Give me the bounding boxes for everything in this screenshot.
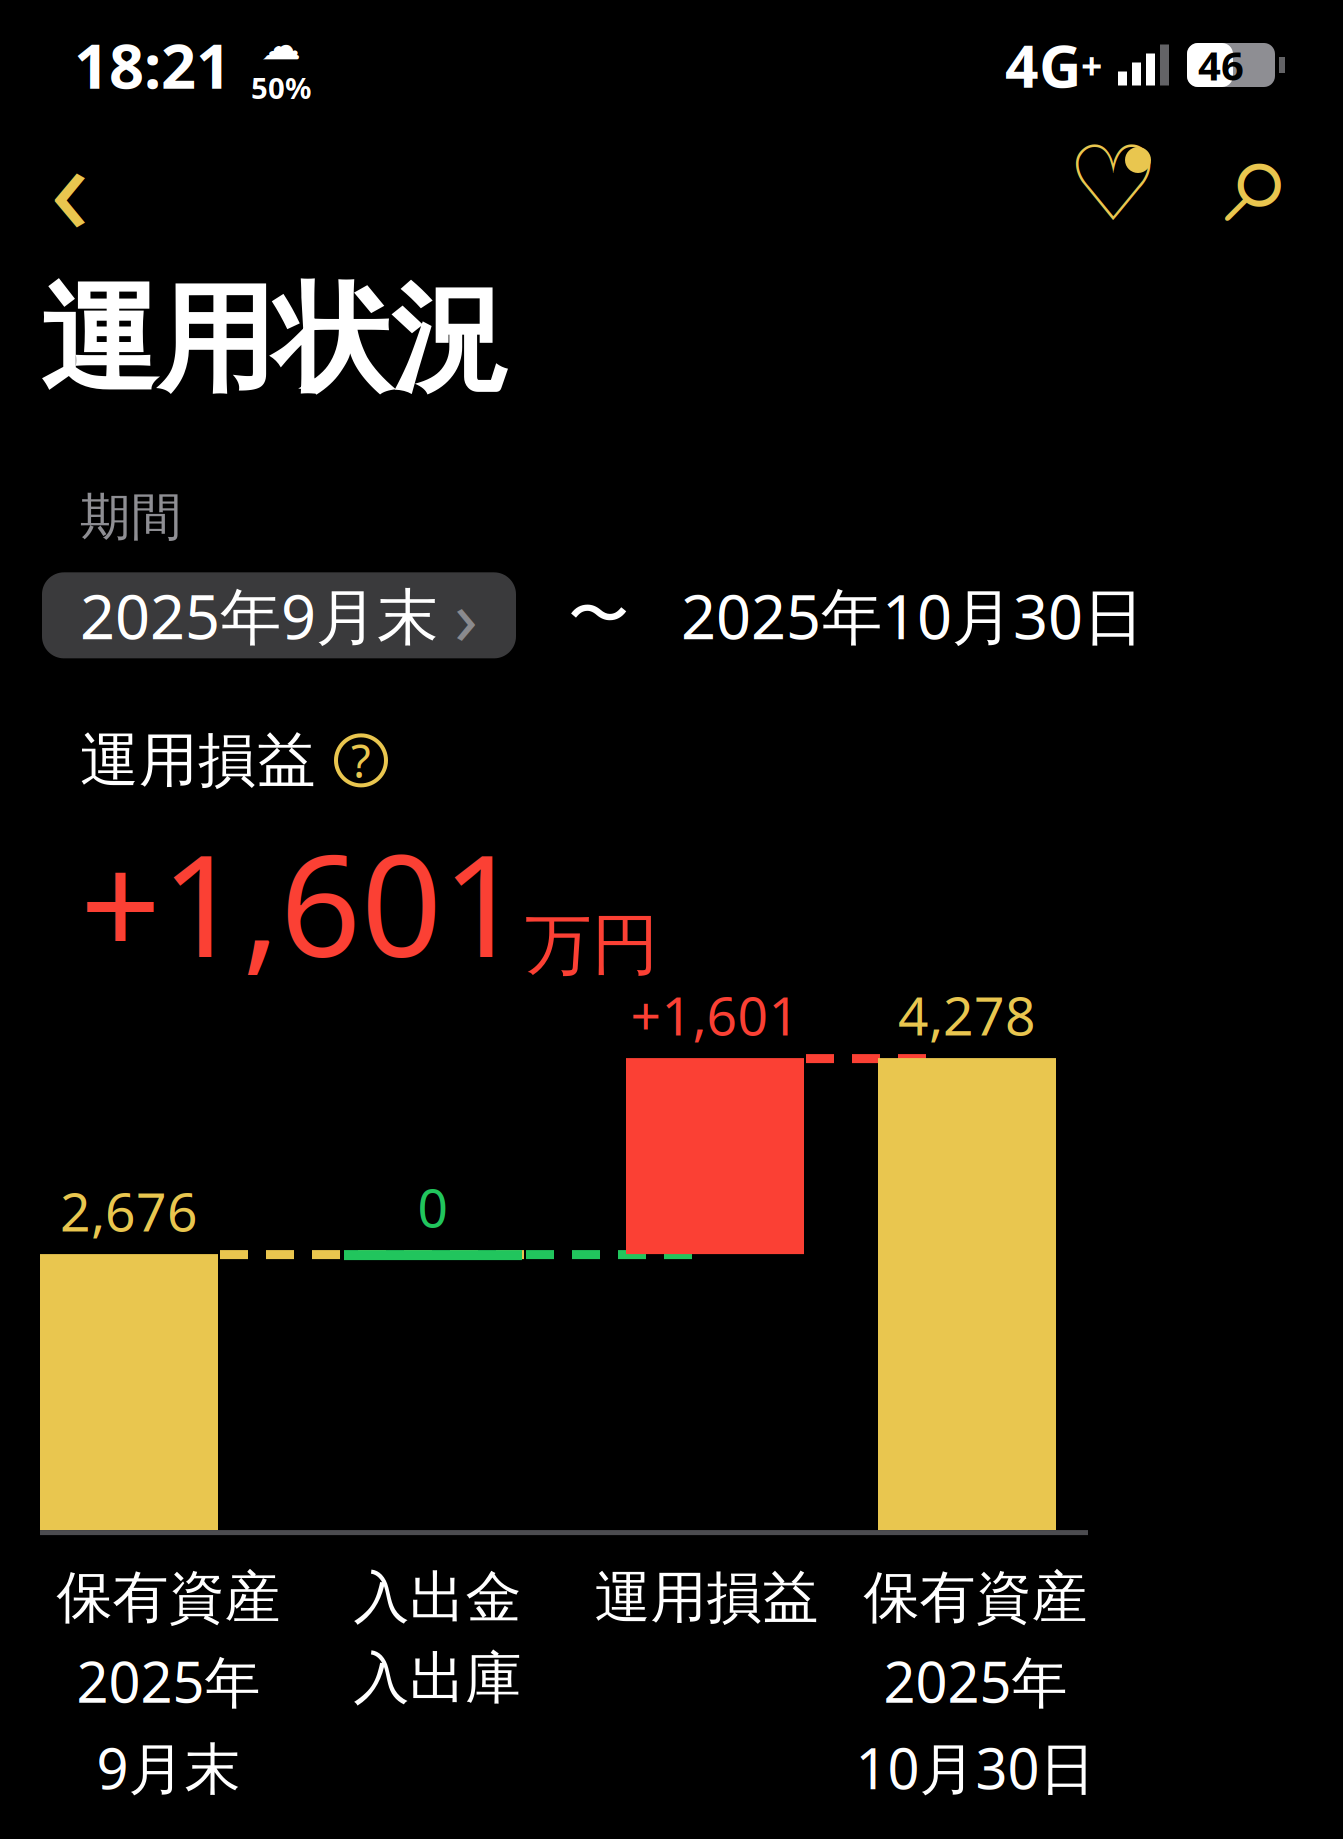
staticText: 2025年10月30日 bbox=[681, 575, 1144, 656]
button[interactable]: 検索 bbox=[1209, 131, 1309, 237]
staticText: 入出金 bbox=[353, 1563, 521, 1632]
staticText: ☁ bbox=[261, 23, 301, 68]
staticText: 4,278 bbox=[898, 979, 1036, 1050]
staticText: 〜 bbox=[568, 578, 629, 653]
staticText: 0 bbox=[417, 1171, 448, 1242]
staticText: 50% bbox=[251, 68, 311, 107]
staticText: + bbox=[1081, 40, 1102, 90]
staticText: 運用状況 bbox=[40, 268, 508, 412]
staticText: 10月30日 bbox=[855, 1730, 1095, 1805]
staticText: › bbox=[454, 564, 478, 667]
staticText: 万円 bbox=[525, 904, 659, 986]
staticText: 保有資産 bbox=[863, 1563, 1087, 1632]
staticText: ? bbox=[351, 730, 371, 790]
staticText: 保有資産 bbox=[56, 1563, 280, 1632]
button[interactable]: 運用損益とは bbox=[336, 735, 386, 785]
staticText: 期間 bbox=[80, 486, 182, 548]
staticText: 2025年 bbox=[883, 1644, 1067, 1718]
staticText: 入出庫 bbox=[353, 1644, 521, 1713]
button[interactable]: 開始日を選択 bbox=[42, 572, 516, 658]
staticText: 46 bbox=[1198, 38, 1244, 91]
staticText: ⌕ bbox=[1224, 123, 1294, 245]
staticText: ‹ bbox=[49, 97, 90, 271]
staticText: 2,676 bbox=[60, 1175, 198, 1246]
staticText: 運用損益 bbox=[80, 724, 316, 796]
staticText: 4G bbox=[1005, 26, 1081, 104]
staticText: ♡ bbox=[1066, 125, 1159, 243]
button[interactable]: 戻る bbox=[24, 131, 116, 237]
staticText: 2025年 bbox=[76, 1644, 260, 1718]
staticText: 2025年9月末 bbox=[80, 575, 438, 656]
staticText: +1,601 bbox=[630, 979, 799, 1050]
button[interactable]: お気に入り bbox=[1063, 131, 1163, 237]
staticText: 運用損益 bbox=[594, 1563, 818, 1632]
staticText: 9月末 bbox=[96, 1730, 240, 1805]
staticText: 18:21 bbox=[74, 24, 231, 106]
staticText: +1,601 bbox=[80, 808, 523, 996]
